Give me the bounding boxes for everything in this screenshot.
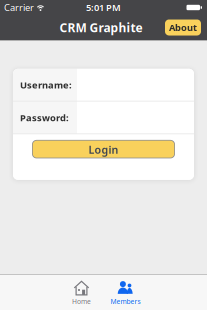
button[interactable]: Members [107,280,143,306]
button[interactable]: Home [63,280,99,306]
button[interactable]: About [165,19,201,35]
staticText: Password: [20,111,69,124]
staticText: 5:01 PM [86,1,121,14]
staticText: Members [110,297,140,306]
staticText: About [169,21,197,34]
staticText: Carrier [4,1,34,14]
staticText: Login [88,143,118,157]
staticText: CRM Graphite [59,19,142,35]
staticText: Home [72,297,91,306]
staticText: Username: [20,79,72,91]
button[interactable]: Login [32,140,175,158]
